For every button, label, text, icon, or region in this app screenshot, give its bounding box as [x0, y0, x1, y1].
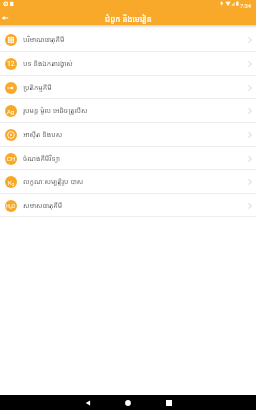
button[interactable]: ប្រតិកម្មគីមី — [0, 76, 256, 99]
staticText: ជំពូក និងមេរៀន — [105, 13, 152, 24]
staticText: បទ និងឯកតារង្វាស់ — [23, 59, 246, 69]
button[interactable]: 12 — [0, 52, 256, 76]
staticText: លក្ខណៈសម្បត្តិរូប បាស — [23, 177, 246, 187]
staticText: K₂ — [8, 179, 15, 186]
button[interactable]: Back — [0, 12, 10, 25]
button[interactable]: CH — [0, 147, 256, 170]
staticText: រូបមន្ត ម៉ូល អេឆិចត្រូលីស — [23, 106, 246, 116]
button[interactable]: Back — [75, 395, 100, 410]
staticText: អាស៊ីត និងបស — [23, 130, 246, 140]
button[interactable]: Home — [115, 395, 140, 410]
staticText: 12 — [7, 60, 15, 68]
button[interactable]: Ag — [0, 99, 256, 123]
button[interactable]: បរិមាណធាតុគីមី — [0, 28, 256, 52]
staticText: សមាសធាតុគីមី — [23, 201, 246, 211]
button[interactable]: អាស៊ីត និងបស — [0, 123, 256, 147]
staticText: CH — [7, 156, 15, 163]
staticText: ចំណងគីមីវិទ្យា — [23, 154, 246, 164]
button[interactable]: H₂O — [0, 194, 256, 217]
staticText: H₂O — [6, 203, 16, 209]
button[interactable]: Recent apps — [156, 395, 181, 410]
button[interactable]: K₂ — [0, 170, 256, 194]
staticText: Ag — [7, 108, 15, 115]
staticText: ប្រតិកម្មគីមី — [23, 83, 246, 93]
staticText: បរិមាណធាតុគីមី — [23, 35, 246, 45]
staticText: 7:34 — [240, 3, 251, 10]
